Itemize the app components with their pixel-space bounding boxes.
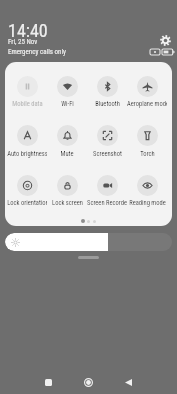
button[interactable] [127,76,167,109]
staticText: Mute [60,150,74,158]
button[interactable]: Back [114,368,143,394]
staticText: Bluetooth [95,100,120,108]
button[interactable]: Settings [159,34,172,47]
button[interactable] [47,76,87,109]
staticText: Lock screen [52,199,83,207]
staticText: Reading mode [129,199,166,207]
staticText: Fri, 25 Nov [8,38,38,46]
button[interactable] [7,76,47,109]
button[interactable]: Recents [34,368,63,394]
staticText: Screen Recorder [87,199,127,207]
staticText: Mobile data [12,100,43,108]
button[interactable] [7,175,47,208]
staticText: Auto brightness [7,150,47,158]
button[interactable] [87,175,127,208]
staticText: Aeroplane mode [127,100,167,108]
button[interactable] [127,125,167,158]
staticText: 14:40 [8,20,48,41]
button[interactable] [87,76,127,109]
button[interactable]: Brightness [5,233,172,251]
button[interactable] [47,125,87,158]
button[interactable] [127,175,167,208]
staticText: Wi-Fi [61,100,74,108]
staticText: Lock orientation [7,199,47,207]
button[interactable] [47,175,87,208]
staticText: Emergency calls only [8,48,67,56]
staticText: Torch [140,150,155,158]
button[interactable] [7,125,47,158]
staticText: Screenshot [93,150,122,158]
button[interactable]: Home [74,368,103,394]
button[interactable] [87,125,127,158]
